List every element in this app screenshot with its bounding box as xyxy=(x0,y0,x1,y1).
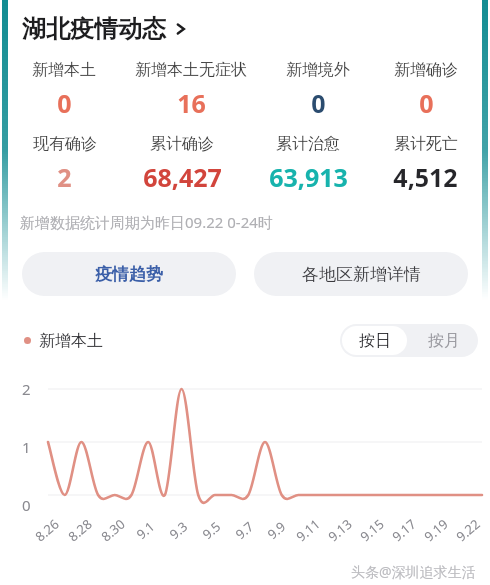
staticText: 16 xyxy=(177,86,206,120)
staticText: 累计死亡 xyxy=(394,134,458,154)
staticText: 累计治愈 xyxy=(276,134,340,154)
staticText: 0 xyxy=(311,86,326,120)
staticText: 9.9 xyxy=(263,517,289,543)
button[interactable]: 湖北疫情动态 xyxy=(22,14,189,44)
staticText: 新增本土无症状 xyxy=(135,60,247,80)
staticText: 9.13 xyxy=(324,515,356,545)
staticText: 8.28 xyxy=(64,515,96,545)
staticText: 湖北疫情动态 xyxy=(22,14,166,44)
staticText: 9.15 xyxy=(356,515,388,545)
staticText: 2 xyxy=(22,379,31,399)
staticText: 新增本土 xyxy=(32,60,96,80)
staticText: 9.22 xyxy=(452,515,484,545)
staticText: 9.19 xyxy=(420,515,452,545)
staticText: 9.17 xyxy=(388,515,420,545)
staticText: 新增确诊 xyxy=(394,60,458,80)
staticText: 0 xyxy=(22,495,31,515)
staticText: 9.11 xyxy=(292,515,324,545)
staticText: 63,913 xyxy=(269,160,348,194)
staticText: 0 xyxy=(57,86,72,120)
staticText: 4,512 xyxy=(393,160,458,194)
staticText: 新增境外 xyxy=(286,60,350,80)
staticText: 68,427 xyxy=(143,160,222,194)
staticText: 新增数据统计周期为昨日09.22 0-24时 xyxy=(20,212,273,232)
button[interactable]: 各地区新增详情 xyxy=(254,252,468,296)
staticText: 现有确诊 xyxy=(33,134,97,154)
staticText: 9.5 xyxy=(198,517,224,543)
button[interactable]: 疫情趋势 xyxy=(22,252,236,296)
button[interactable]: 按月 xyxy=(409,324,478,357)
staticText: 按日 xyxy=(359,331,391,351)
staticText: 按月 xyxy=(428,331,460,351)
staticText: 9.3 xyxy=(165,517,191,543)
staticText: 0 xyxy=(419,86,434,120)
staticText: 新增本土 xyxy=(39,331,103,351)
staticText: 9.7 xyxy=(231,517,257,543)
staticText: 头条@深圳追求生活 xyxy=(351,562,476,581)
staticText: 8.26 xyxy=(31,515,63,545)
staticText: 2 xyxy=(57,160,72,194)
staticText: 疫情趋势 xyxy=(95,264,163,285)
staticText: 8.30 xyxy=(97,515,129,545)
staticText: 1 xyxy=(22,437,31,457)
staticText: 9.1 xyxy=(132,517,158,543)
staticText: 累计确诊 xyxy=(150,134,214,154)
staticText: 各地区新增详情 xyxy=(302,264,421,285)
button[interactable]: 按日 xyxy=(342,326,407,355)
